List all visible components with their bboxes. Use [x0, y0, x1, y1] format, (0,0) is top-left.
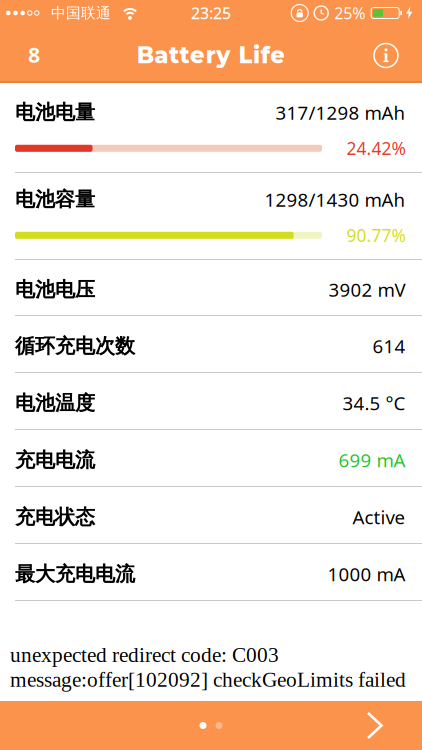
staticText: 3902 mV [328, 277, 405, 302]
staticText: 25% [334, 2, 365, 24]
staticText: 8 [28, 40, 40, 69]
staticText: 充电电流 [15, 448, 95, 472]
staticText: 循环充电次数 [15, 334, 135, 358]
staticText: unexpected redirect code: C003 [10, 643, 279, 667]
button[interactable]: 8 [0, 39, 40, 68]
staticText: 1000 mA [327, 562, 405, 586]
staticText: 中国联通 [51, 4, 111, 22]
staticText: 24.42% [346, 137, 405, 160]
staticText: 最大充电电流 [15, 562, 135, 586]
staticText: 电池电压 [15, 277, 95, 302]
staticText: message:offer[102092] checkGeoLimits fai… [10, 668, 406, 691]
staticText: 电池温度 [15, 391, 95, 415]
button[interactable]: Info [374, 41, 422, 65]
staticText: 电池容量 [15, 187, 95, 212]
staticText: 90.77% [346, 224, 405, 247]
staticText: 317/1298 mAh [275, 100, 405, 125]
staticText: 电池电量 [15, 100, 95, 125]
staticText: 34.5 °C [342, 391, 405, 415]
button[interactable]: Page 1 of 2 [199, 722, 222, 729]
staticText: 1298/1430 mAh [264, 187, 405, 212]
staticText: 充电状态 [15, 505, 95, 529]
staticText: 23:25 [191, 2, 231, 24]
button[interactable]: Next page [366, 711, 422, 740]
staticText: 699 mA [338, 448, 405, 472]
staticText: 614 [372, 334, 405, 358]
staticText: Active [352, 505, 405, 529]
staticText: Battery Life [137, 41, 285, 69]
